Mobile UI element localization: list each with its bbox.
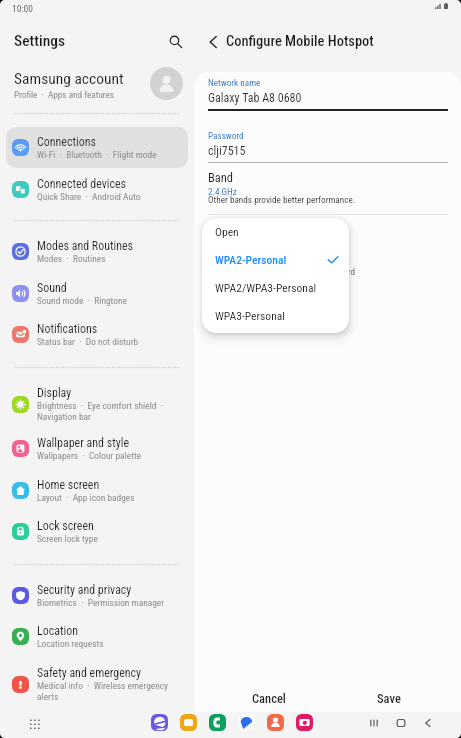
button[interactable]: App [151,714,168,731]
button[interactable]: App [296,714,313,731]
staticText: WPA2-Personal [215,253,287,267]
button[interactable]: App [238,714,255,731]
staticText: Devices can connect using this password [208,267,355,278]
staticText: Samsung account [14,70,124,88]
button[interactable]: Wallpaper and style [6,428,188,469]
staticText: Connected devices [37,177,127,191]
staticText: Open [215,225,239,239]
button[interactable]: Sound [6,273,188,314]
staticText: Status bar · Do not disturb [37,336,139,347]
staticText: Configure Mobile Hotspot [226,33,374,50]
button[interactable]: Back [420,715,436,731]
button[interactable]: Security and privacy [6,575,188,616]
button[interactable]: Connections [6,127,188,168]
button[interactable]: Cancel [208,685,330,711]
button[interactable]: App [267,714,284,731]
button[interactable]: Samsung account [6,62,188,104]
staticText: Wallpapers · Colour palette [37,450,142,461]
staticText: Layout · App icon badges [37,492,135,503]
staticText: Notifications [37,322,98,336]
staticText: WPA3-Personal [215,309,286,323]
staticText: Band [208,170,234,185]
staticText: Display [37,386,72,400]
staticText: Quick Share · Android Auto [37,191,141,202]
staticText: Wallpaper and style [37,436,130,450]
button[interactable]: WPA2/WPA3-Personal [202,274,349,302]
button[interactable]: App [180,714,197,731]
staticText: Cancel [252,691,286,706]
button[interactable]: WPA3-Personal [202,302,349,330]
button[interactable]: Notifications [6,314,188,355]
staticText: Brightness · Eye comfort shield · Naviga… [37,400,164,422]
button[interactable]: Back [203,31,225,53]
staticText: Network name [208,77,261,88]
staticText: 2.4 GHz [208,186,237,197]
button[interactable]: App [209,714,226,731]
staticText: Settings [14,32,66,50]
staticText: Wi-Fi · Bluetooth · Flight mode [37,149,157,160]
button[interactable]: Modes and Routines [6,231,188,272]
button[interactable]: Open [202,218,349,246]
button[interactable]: WPA2-Personal [202,246,349,274]
button[interactable]: Display [6,379,188,429]
staticText: Other bands provide better performance. [208,194,356,205]
staticText: Location requests [37,638,104,649]
button[interactable]: Safety and emergency [6,659,188,709]
staticText: Profile · Apps and features [14,89,115,100]
staticText: Screen lock type [37,533,98,544]
button[interactable]: Lock screen [6,511,188,552]
staticText: Connections [37,135,96,149]
staticText: WPA2/WPA3-Personal [215,281,317,295]
button[interactable]: Save [330,685,448,711]
staticText: Home screen [37,478,100,492]
staticText: clji7515 [208,144,246,158]
staticText: Biometrics · Permission manager [37,597,165,608]
staticText: Password [208,130,244,141]
staticText: Security [208,226,248,241]
staticText: Lock screen [37,519,94,533]
staticText: Safety and emergency [37,666,142,680]
staticText: Security and privacy [37,583,132,597]
button[interactable]: Connected devices [6,169,188,210]
button[interactable]: Home [393,715,409,731]
button[interactable]: Home screen [6,470,188,511]
staticText: Sound [37,281,67,295]
staticText: Location [37,624,78,638]
button[interactable]: Search [164,30,185,51]
staticText: Modes and Routines [37,239,134,253]
staticText: Modes · Routines [37,253,106,264]
staticText: Save [377,691,401,706]
staticText: 10:00 [12,3,33,14]
button[interactable]: Location [6,616,188,657]
staticText: Galaxy Tab A8 0680 [208,91,302,105]
button[interactable]: Apps [30,718,42,730]
staticText: Sound mode · Ringtone [37,295,127,306]
button[interactable]: Recents [366,715,382,731]
staticText: Medical info · Wireless emergency alerts [37,680,168,702]
